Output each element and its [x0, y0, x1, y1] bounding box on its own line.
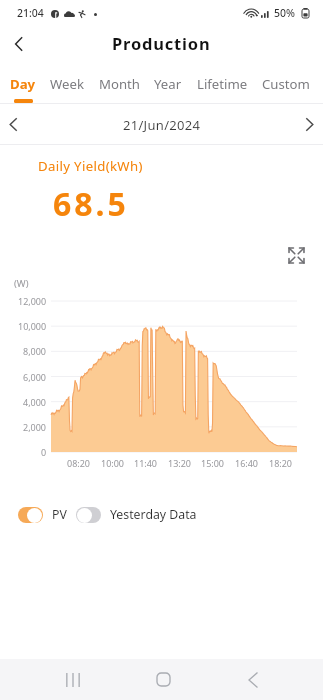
- button[interactable]: Next day: [265, 104, 323, 145]
- staticText: 4,000: [23, 396, 47, 408]
- staticText: 10:00: [101, 457, 125, 469]
- staticText: 50%: [274, 6, 295, 20]
- staticText: Lifetime: [197, 75, 248, 93]
- button[interactable]: Week: [50, 70, 84, 93]
- staticText: 2,000: [23, 421, 47, 433]
- staticText: Daily Yield(kWh): [38, 157, 143, 175]
- staticText: Yesterday Data: [110, 506, 197, 523]
- staticText: 12,000: [18, 295, 47, 307]
- staticText: 08:20: [67, 457, 91, 469]
- staticText: (W): [14, 277, 29, 290]
- staticText: Month: [99, 75, 140, 93]
- button[interactable]: Back: [233, 659, 273, 700]
- staticText: 18:20: [269, 457, 293, 469]
- staticText: 6,000: [23, 371, 47, 383]
- button[interactable]: Custom: [262, 70, 310, 93]
- button[interactable]: Year: [154, 70, 182, 93]
- staticText: 10,000: [18, 320, 47, 332]
- button[interactable]: PV: [18, 506, 67, 523]
- staticText: 13:20: [168, 457, 192, 469]
- button[interactable]: Back: [4, 30, 32, 58]
- staticText: Production: [112, 32, 211, 54]
- button[interactable]: Month: [99, 70, 140, 93]
- staticText: 0: [41, 446, 47, 458]
- button[interactable]: Home: [143, 659, 183, 700]
- staticText: 15:00: [201, 457, 225, 469]
- staticText: 11:40: [134, 457, 158, 469]
- staticText: 21/Jun/2024: [123, 116, 201, 134]
- staticText: 68.5: [53, 182, 129, 226]
- staticText: PV: [52, 506, 67, 523]
- staticText: Week: [50, 75, 84, 93]
- staticText: 21:04: [17, 6, 44, 20]
- button[interactable]: Lifetime: [197, 70, 248, 93]
- staticText: Day: [10, 75, 36, 93]
- staticText: Year: [154, 75, 182, 93]
- staticText: Custom: [262, 75, 310, 93]
- button[interactable]: Recents: [53, 659, 93, 700]
- button[interactable]: Yesterday Data: [76, 506, 197, 523]
- button[interactable]: Previous day: [0, 104, 58, 145]
- staticText: 8,000: [23, 345, 47, 357]
- button[interactable]: Full screen: [284, 243, 308, 267]
- button[interactable]: Day: [10, 70, 36, 103]
- staticText: 16:40: [235, 457, 259, 469]
